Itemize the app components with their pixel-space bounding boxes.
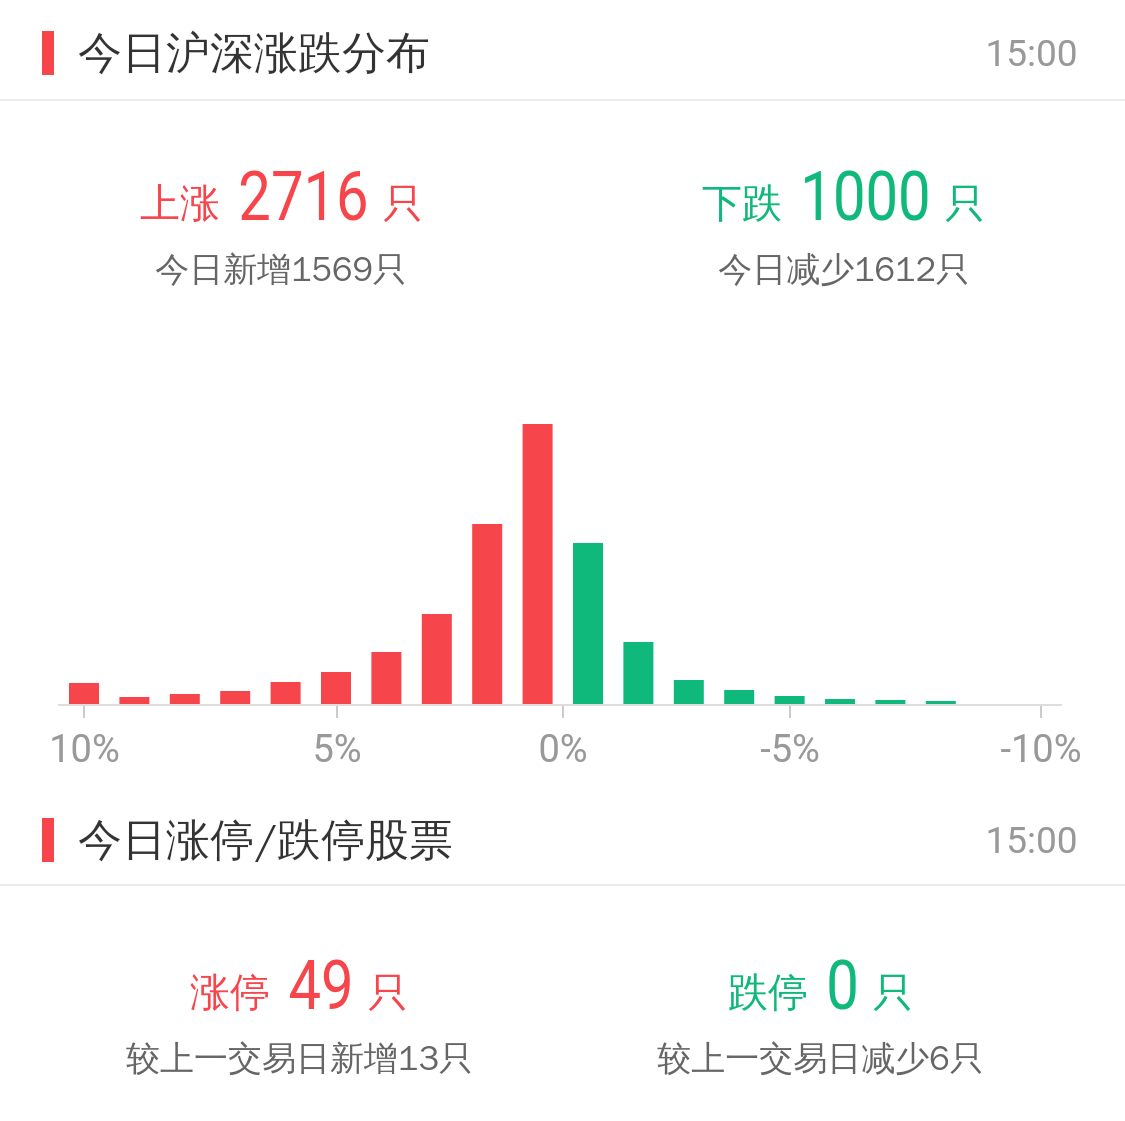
button[interactable]: 今日涨停/跌停股票 (0, 790, 1125, 890)
staticText: 下跌 (702, 178, 782, 228)
staticText: 10% (49, 727, 120, 772)
staticText: 较上一交易日新增13只 (126, 1037, 473, 1080)
staticText: 今日涨停/跌停股票 (78, 813, 453, 868)
staticText: 较上一交易日减少6只 (657, 1037, 984, 1080)
staticText: 今日沪深涨跌分布 (78, 26, 430, 81)
staticText: 只 (945, 178, 985, 228)
staticText: 只 (873, 967, 913, 1017)
staticText: 0% (538, 727, 588, 772)
staticText: 跌停 (728, 967, 808, 1017)
staticText: 49 (288, 945, 354, 1025)
staticText: 5% (312, 727, 362, 772)
staticText: 2716 (238, 156, 369, 236)
staticText: 15:00 (985, 32, 1078, 75)
staticText: 15:00 (985, 819, 1078, 862)
staticText: 只 (383, 178, 423, 228)
staticText: 上涨 (140, 178, 220, 228)
staticText: 涨停 (190, 967, 270, 1017)
staticText: 只 (368, 967, 408, 1017)
button[interactable]: 今日沪深涨跌分布 (0, 6, 1125, 100)
staticText: 今日新增1569只 (155, 248, 407, 291)
staticText: 今日减少1612只 (718, 248, 970, 291)
staticText: -10% (1000, 727, 1082, 772)
staticText: 0 (826, 945, 859, 1025)
staticText: 1000 (800, 156, 931, 236)
staticText: -5% (760, 727, 820, 772)
